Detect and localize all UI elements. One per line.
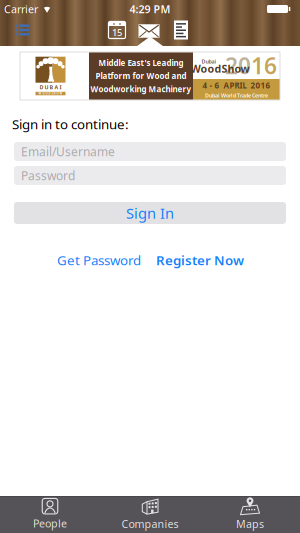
staticText: 20 — [225, 50, 251, 80]
button[interactable]: Calendar — [108, 21, 126, 39]
staticText: Middle East's Leading — [98, 58, 183, 68]
button[interactable]: Sign In — [14, 202, 286, 224]
staticText: Get Password — [57, 251, 141, 269]
staticText: People — [33, 516, 67, 530]
button[interactable]: Messages — [138, 24, 159, 38]
button[interactable]: Documents — [174, 20, 188, 39]
staticText: 15 — [112, 26, 122, 38]
button[interactable]: Register Now — [156, 251, 244, 269]
button[interactable]: Maps — [200, 496, 300, 532]
button[interactable]: Password — [14, 166, 286, 185]
button[interactable]: Menu — [15, 24, 29, 36]
staticText: Sign In — [126, 203, 174, 223]
staticText: Email/Username — [21, 143, 115, 159]
button[interactable]: Get Password — [57, 251, 141, 269]
staticText: 16 — [251, 50, 277, 80]
staticText: Maps — [236, 517, 264, 531]
staticText: Platform for Wood and — [95, 71, 186, 81]
staticText: Sign in to continue: — [12, 115, 129, 133]
button[interactable]: Email/Username — [14, 142, 286, 161]
staticText: Password — [21, 167, 75, 183]
staticText: 4 - 6 APRIL 2016 — [202, 80, 270, 91]
staticText: W O O D S H O W — [38, 92, 62, 95]
staticText: WoodShow — [190, 61, 249, 76]
staticText: Dubai World Trade Centre — [205, 92, 268, 99]
staticText: Dubai — [201, 58, 216, 65]
staticText: Companies — [121, 517, 178, 531]
staticText: Register Now — [156, 251, 244, 269]
button[interactable]: People — [0, 496, 100, 532]
staticText: Carrier — [4, 2, 38, 16]
staticText: Woodworking Machinery — [90, 84, 191, 94]
staticText: D U B A I — [39, 84, 61, 91]
button[interactable]: Dubai WoodShow 2016, 4-6 April 2016, Dub… — [20, 52, 280, 100]
button[interactable]: Companies — [100, 496, 200, 532]
staticText: 4:29 PM — [129, 2, 170, 16]
